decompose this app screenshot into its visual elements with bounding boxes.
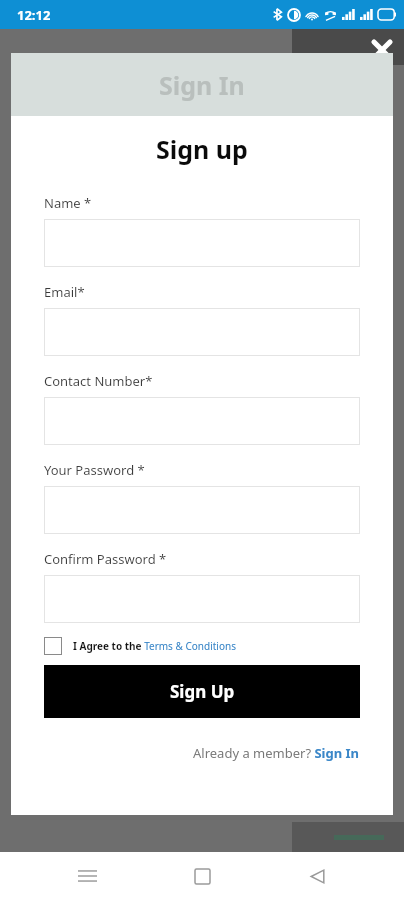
staticText: Login/Signup <box>33 49 132 69</box>
button[interactable]: Sign In <box>11 53 393 116</box>
staticText: Your Password * <box>44 461 145 479</box>
button[interactable]: Back <box>300 859 334 893</box>
staticText: Email* <box>44 283 85 301</box>
button[interactable]: Close <box>369 37 395 63</box>
button[interactable]: Recent apps <box>70 859 104 893</box>
button[interactable]: Sign Up <box>44 665 360 718</box>
staticText: Already a member? Sign In <box>193 744 360 762</box>
staticText: Contact Number* <box>44 372 153 390</box>
staticText: Name * <box>44 194 92 212</box>
staticText: Sign up <box>156 132 248 166</box>
button[interactable]: Home <box>185 859 219 893</box>
button[interactable] <box>44 486 360 534</box>
staticText: Confirm Password * <box>44 550 167 568</box>
button[interactable] <box>44 397 360 445</box>
button[interactable] <box>44 575 360 623</box>
staticText: Sign In <box>159 68 245 102</box>
staticText: 12:12 <box>17 6 51 24</box>
button[interactable]: I Agree to the Terms & Conditions <box>44 637 360 655</box>
button[interactable]: Already a member? Sign In <box>193 744 360 762</box>
staticText: I Agree to the Terms & Conditions <box>73 639 236 653</box>
button[interactable] <box>44 308 360 356</box>
staticText: Sign Up <box>170 680 235 703</box>
button[interactable] <box>44 219 360 267</box>
